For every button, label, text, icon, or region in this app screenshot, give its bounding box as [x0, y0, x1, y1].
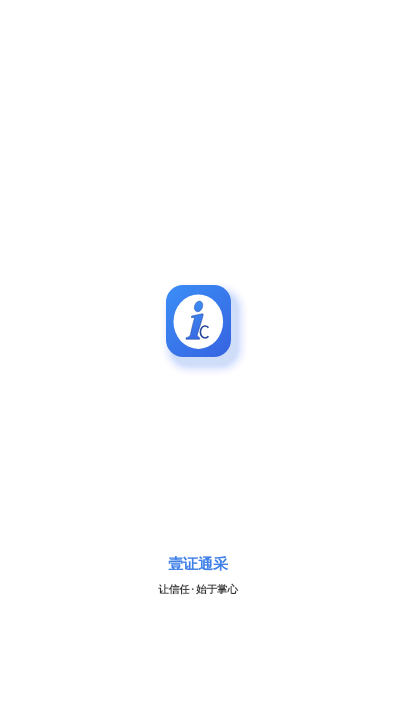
button[interactable]: 壹证通采 app logo: [166, 285, 231, 357]
staticText: 壹证通采: [168, 555, 228, 574]
staticText: 让信任 · 始于掌心: [158, 582, 238, 596]
